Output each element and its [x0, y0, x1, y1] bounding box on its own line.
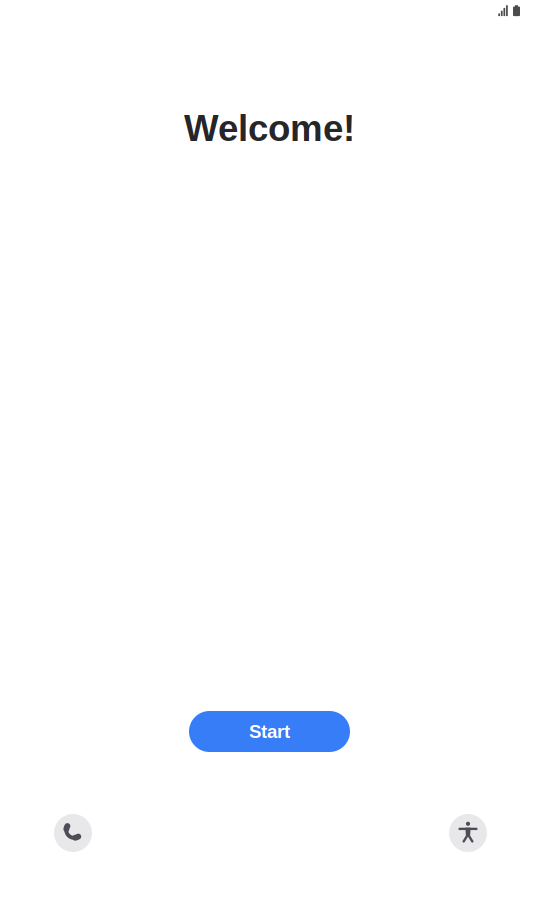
staticText: Start	[249, 721, 290, 742]
button[interactable]: Accessibility options	[449, 814, 487, 852]
button[interactable]: Start	[189, 711, 350, 752]
button[interactable]: Call	[54, 814, 92, 852]
staticText: Welcome!	[184, 108, 355, 149]
